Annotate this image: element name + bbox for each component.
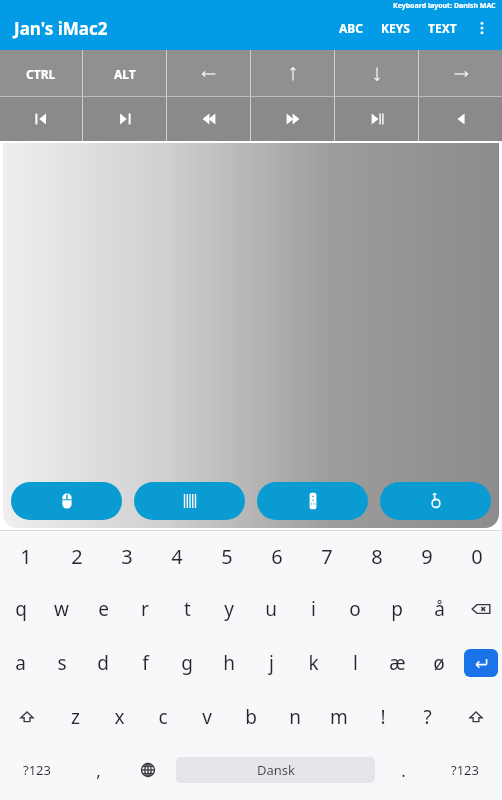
staticText: k <box>308 650 319 676</box>
button[interactable]: 1 <box>0 531 51 582</box>
staticText: a <box>15 650 26 676</box>
button[interactable]: t <box>166 582 208 636</box>
button[interactable]: a <box>0 636 41 690</box>
button[interactable]: h <box>208 636 250 690</box>
button[interactable]: u <box>250 582 292 636</box>
button[interactable]: q <box>0 582 41 636</box>
staticText: ?123 <box>23 761 51 779</box>
button[interactable]: m <box>317 690 361 744</box>
button[interactable]: p <box>376 582 418 636</box>
button[interactable]: Trackpad <box>3 143 499 528</box>
button[interactable]: f <box>124 636 166 690</box>
button[interactable]: o <box>334 582 376 636</box>
staticText: KEYS <box>381 20 410 36</box>
staticText: 5 <box>221 543 233 570</box>
staticText: 9 <box>421 543 433 570</box>
button[interactable]: Shift <box>449 690 502 744</box>
button[interactable]: Previous track <box>0 97 82 141</box>
staticText: b <box>245 704 257 730</box>
staticText: 8 <box>371 543 383 570</box>
button[interactable]: Backspace <box>460 582 502 636</box>
button[interactable]: b <box>229 690 273 744</box>
button[interactable]: å <box>418 582 460 636</box>
button[interactable]: d <box>82 636 124 690</box>
button[interactable]: 2 <box>51 531 102 582</box>
button[interactable]: KEYS <box>372 14 419 42</box>
button[interactable]: ?123 <box>428 744 502 796</box>
button[interactable]: x <box>97 690 141 744</box>
staticText: 7 <box>321 543 333 570</box>
button[interactable]: Keyboard mode <box>134 482 245 520</box>
button[interactable]: g <box>166 636 208 690</box>
button[interactable]: c <box>141 690 185 744</box>
button[interactable]: z <box>53 690 97 744</box>
button[interactable]: Arrow down <box>335 50 418 97</box>
button[interactable]: æ <box>376 636 418 690</box>
staticText: , <box>96 759 101 782</box>
staticText: q <box>15 596 27 622</box>
button[interactable]: ABC <box>330 14 372 42</box>
button[interactable]: . <box>379 744 428 796</box>
button[interactable]: ? <box>405 690 449 744</box>
button[interactable]: r <box>124 582 166 636</box>
button[interactable]: k <box>292 636 334 690</box>
button[interactable]: Arrow left <box>167 50 250 97</box>
button[interactable]: Enter <box>464 649 498 677</box>
staticText: e <box>98 596 109 622</box>
staticText: x <box>114 704 125 730</box>
staticText: ! <box>380 704 386 730</box>
button[interactable]: 5 <box>202 531 252 582</box>
button[interactable]: ! <box>361 690 405 744</box>
button[interactable]: Shift <box>0 690 53 744</box>
button[interactable]: Dansk <box>176 757 375 783</box>
button[interactable]: CTRL <box>0 50 82 97</box>
button[interactable]: n <box>273 690 317 744</box>
button[interactable]: Fast forward <box>251 97 334 141</box>
button[interactable]: Rewind <box>167 97 250 141</box>
button[interactable]: Mouse mode <box>11 482 122 520</box>
button[interactable]: Touch mode <box>380 482 491 520</box>
button[interactable]: 4 <box>152 531 202 582</box>
button[interactable]: i <box>292 582 334 636</box>
button[interactable]: ALT <box>83 50 166 97</box>
button[interactable]: ?123 <box>0 744 74 796</box>
button[interactable]: j <box>250 636 292 690</box>
button[interactable]: Volume <box>419 97 502 141</box>
button[interactable]: y <box>208 582 250 636</box>
staticText: n <box>289 704 301 730</box>
staticText: ?123 <box>451 761 479 779</box>
staticText: y <box>224 596 234 622</box>
button[interactable]: , <box>74 744 123 796</box>
button[interactable]: Change language <box>123 744 172 796</box>
button[interactable]: ø <box>418 636 460 690</box>
button[interactable]: 8 <box>352 531 402 582</box>
button[interactable]: TEXT <box>419 14 466 42</box>
button[interactable]: 6 <box>252 531 302 582</box>
button[interactable]: e <box>82 582 124 636</box>
button[interactable]: Remote mode <box>257 482 368 520</box>
button[interactable]: 3 <box>102 531 152 582</box>
button[interactable]: 9 <box>402 531 452 582</box>
button[interactable]: Arrow up <box>251 50 334 97</box>
staticText: TEXT <box>428 20 457 36</box>
staticText: l <box>353 650 358 676</box>
staticText: h <box>223 650 235 676</box>
button[interactable]: 7 <box>302 531 352 582</box>
button[interactable]: Play pause <box>335 97 418 141</box>
button[interactable]: w <box>41 582 82 636</box>
button[interactable]: More options <box>466 12 498 44</box>
staticText: 6 <box>271 543 283 570</box>
button[interactable]: v <box>185 690 229 744</box>
staticText: Dansk <box>257 761 295 779</box>
button[interactable]: l <box>334 636 376 690</box>
staticText: ? <box>423 704 432 730</box>
staticText: 0 <box>471 543 483 570</box>
button[interactable]: Next track <box>83 97 166 141</box>
button[interactable]: 0 <box>452 531 502 582</box>
staticText: . <box>401 759 406 782</box>
button[interactable]: s <box>41 636 82 690</box>
staticText: 4 <box>171 543 183 570</box>
staticText: 1 <box>20 543 32 570</box>
staticText: m <box>330 704 348 730</box>
button[interactable]: Arrow right <box>419 50 502 97</box>
